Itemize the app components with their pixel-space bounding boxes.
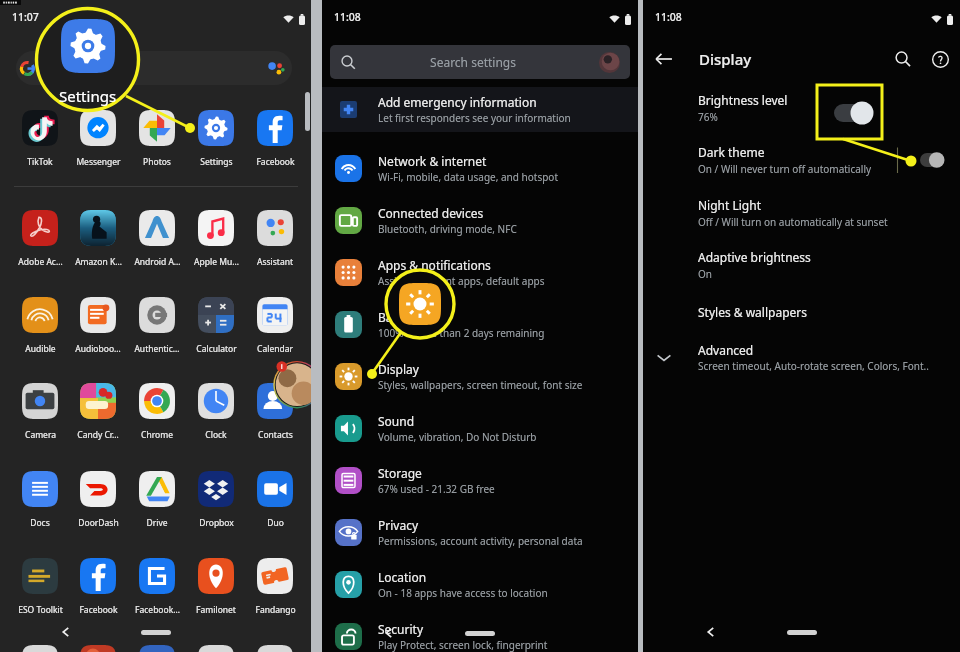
button[interactable]: Adaptive brightness: [698, 241, 960, 289]
staticText: Play Protect, screen lock, fingerprint: [378, 638, 548, 652]
button[interactable]: Contacts: [246, 383, 304, 441]
button[interactable]: [128, 645, 186, 652]
button[interactable]: Familonet: [187, 558, 245, 616]
button[interactable]: Facebook…: [128, 558, 186, 616]
button[interactable]: Back: [375, 619, 403, 647]
button[interactable]: Add emergency information: [322, 87, 638, 132]
button[interactable]: Connected devices: [322, 194, 638, 246]
button[interactable]: Night Light: [698, 189, 960, 237]
button[interactable]: Dropbox: [187, 471, 245, 529]
button[interactable]: Authentic…: [128, 297, 186, 355]
staticText: Settings: [59, 86, 117, 106]
staticText: Apple Mu…: [194, 256, 239, 268]
button[interactable]: Apple Mu…: [187, 210, 245, 268]
button[interactable]: Calendar: [246, 297, 304, 355]
staticText: Android A…: [134, 256, 181, 268]
button[interactable]: Location: [322, 558, 638, 610]
staticText: Adaptive brightness: [698, 249, 811, 265]
button[interactable]: Display: [322, 350, 638, 402]
staticText: Facebook: [79, 604, 118, 616]
staticText: Audioboo…: [75, 343, 121, 355]
button[interactable]: [11, 645, 69, 652]
staticText: Night Light: [698, 197, 761, 213]
button[interactable]: TikTok: [11, 110, 69, 168]
button[interactable]: ESO Toolkit: [11, 558, 69, 616]
staticText: Assistant, recent apps, default apps: [378, 274, 545, 288]
button[interactable]: Privacy: [322, 506, 638, 558]
staticText: Dropbox: [199, 517, 234, 529]
staticText: DoorDash: [78, 517, 119, 529]
button[interactable]: Brightness level: [698, 84, 960, 132]
button[interactable]: Camera: [11, 383, 69, 441]
staticText: Chrome: [141, 429, 173, 441]
staticText: On: [698, 267, 712, 281]
staticText: Drive: [146, 517, 168, 529]
button[interactable]: Audible: [11, 297, 69, 355]
staticText: Bluetooth, driving mode, NFC: [378, 222, 517, 236]
button[interactable]: Chrome: [128, 383, 186, 441]
button[interactable]: Apps & notifications: [322, 246, 638, 298]
button[interactable]: Back: [52, 618, 80, 646]
staticText: Photos: [143, 156, 171, 168]
button[interactable]: [246, 645, 304, 652]
button[interactable]: Candy Cr…: [69, 383, 127, 441]
staticText: Volume, vibration, Do Not Disturb: [378, 430, 537, 444]
button[interactable]: Messenger: [69, 110, 127, 168]
button[interactable]: Network & internet: [322, 142, 638, 194]
button[interactable]: Back: [650, 45, 678, 73]
button[interactable]: Duo: [246, 471, 304, 529]
staticText: Calendar: [257, 343, 293, 355]
button[interactable]: Clock: [187, 383, 245, 441]
button[interactable]: Docs: [11, 471, 69, 529]
button[interactable]: Amazon K…: [69, 210, 127, 268]
button[interactable]: [16, 51, 292, 85]
button[interactable]: Home: [776, 621, 828, 643]
button[interactable]: Android A…: [128, 210, 186, 268]
button[interactable]: Drive: [128, 471, 186, 529]
button[interactable]: Facebook: [69, 558, 127, 616]
button[interactable]: Home: [130, 621, 182, 643]
button[interactable]: [187, 645, 245, 652]
button[interactable]: Storage: [322, 454, 638, 506]
button[interactable]: Assistant: [246, 210, 304, 268]
button[interactable]: Advanced: [643, 333, 960, 381]
staticText: Settings: [200, 156, 233, 168]
staticText: Facebook: [256, 156, 295, 168]
button[interactable]: Search settings: [330, 45, 630, 79]
staticText: Fandango: [255, 604, 296, 616]
button[interactable]: Settings: [187, 110, 245, 168]
button[interactable]: Calculator: [187, 297, 245, 355]
staticText: TikTok: [27, 156, 53, 168]
staticText: Privacy: [378, 517, 419, 533]
staticText: 11:08: [655, 10, 682, 24]
staticText: Facebook…: [135, 604, 180, 616]
button[interactable]: Styles & wallpapers: [698, 288, 960, 336]
staticText: Wi-Fi, mobile, data usage, and hotspot: [378, 170, 558, 184]
button[interactable]: Facebook: [246, 110, 304, 168]
staticText: Apps & notifications: [378, 257, 491, 273]
staticText: Location: [378, 569, 427, 585]
button[interactable]: Photos: [128, 110, 186, 168]
button[interactable]: [69, 645, 127, 652]
button[interactable]: DoorDash: [69, 471, 127, 529]
button[interactable]: Home: [454, 622, 506, 644]
button[interactable]: Search: [889, 45, 917, 73]
button[interactable]: Audioboo…: [69, 297, 127, 355]
button[interactable]: Sound: [322, 402, 638, 454]
button[interactable]: Battery: [322, 298, 638, 350]
button[interactable]: Adobe Ac…: [11, 210, 69, 268]
staticText: Permissions, account activity, personal …: [378, 534, 583, 548]
button[interactable]: Dark theme: [698, 136, 960, 184]
button[interactable]: Back: [697, 618, 725, 646]
button[interactable]: Help: [926, 45, 954, 73]
button[interactable]: Fandango: [246, 558, 304, 616]
button[interactable]: Security: [322, 610, 638, 652]
staticText: Let first responders see your informatio…: [378, 111, 571, 125]
button[interactable]: Dark theme switch: [893, 140, 960, 180]
staticText: Security: [378, 621, 424, 637]
staticText: 11:08: [334, 10, 361, 24]
staticText: Connected devices: [378, 205, 484, 221]
staticText: Messenger: [76, 156, 121, 168]
staticText: Add emergency information: [378, 94, 537, 110]
staticText: Docs: [30, 517, 50, 529]
